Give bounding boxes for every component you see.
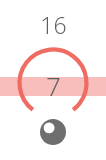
button[interactable]: 16 — [27, 9, 79, 37]
button[interactable]: 7 — [33, 68, 73, 98]
other: Daily progress ring — [0, 0, 106, 160]
staticText: 16 — [40, 9, 67, 37]
button[interactable]: Record — [40, 119, 66, 145]
staticText: 7 — [46, 68, 61, 98]
